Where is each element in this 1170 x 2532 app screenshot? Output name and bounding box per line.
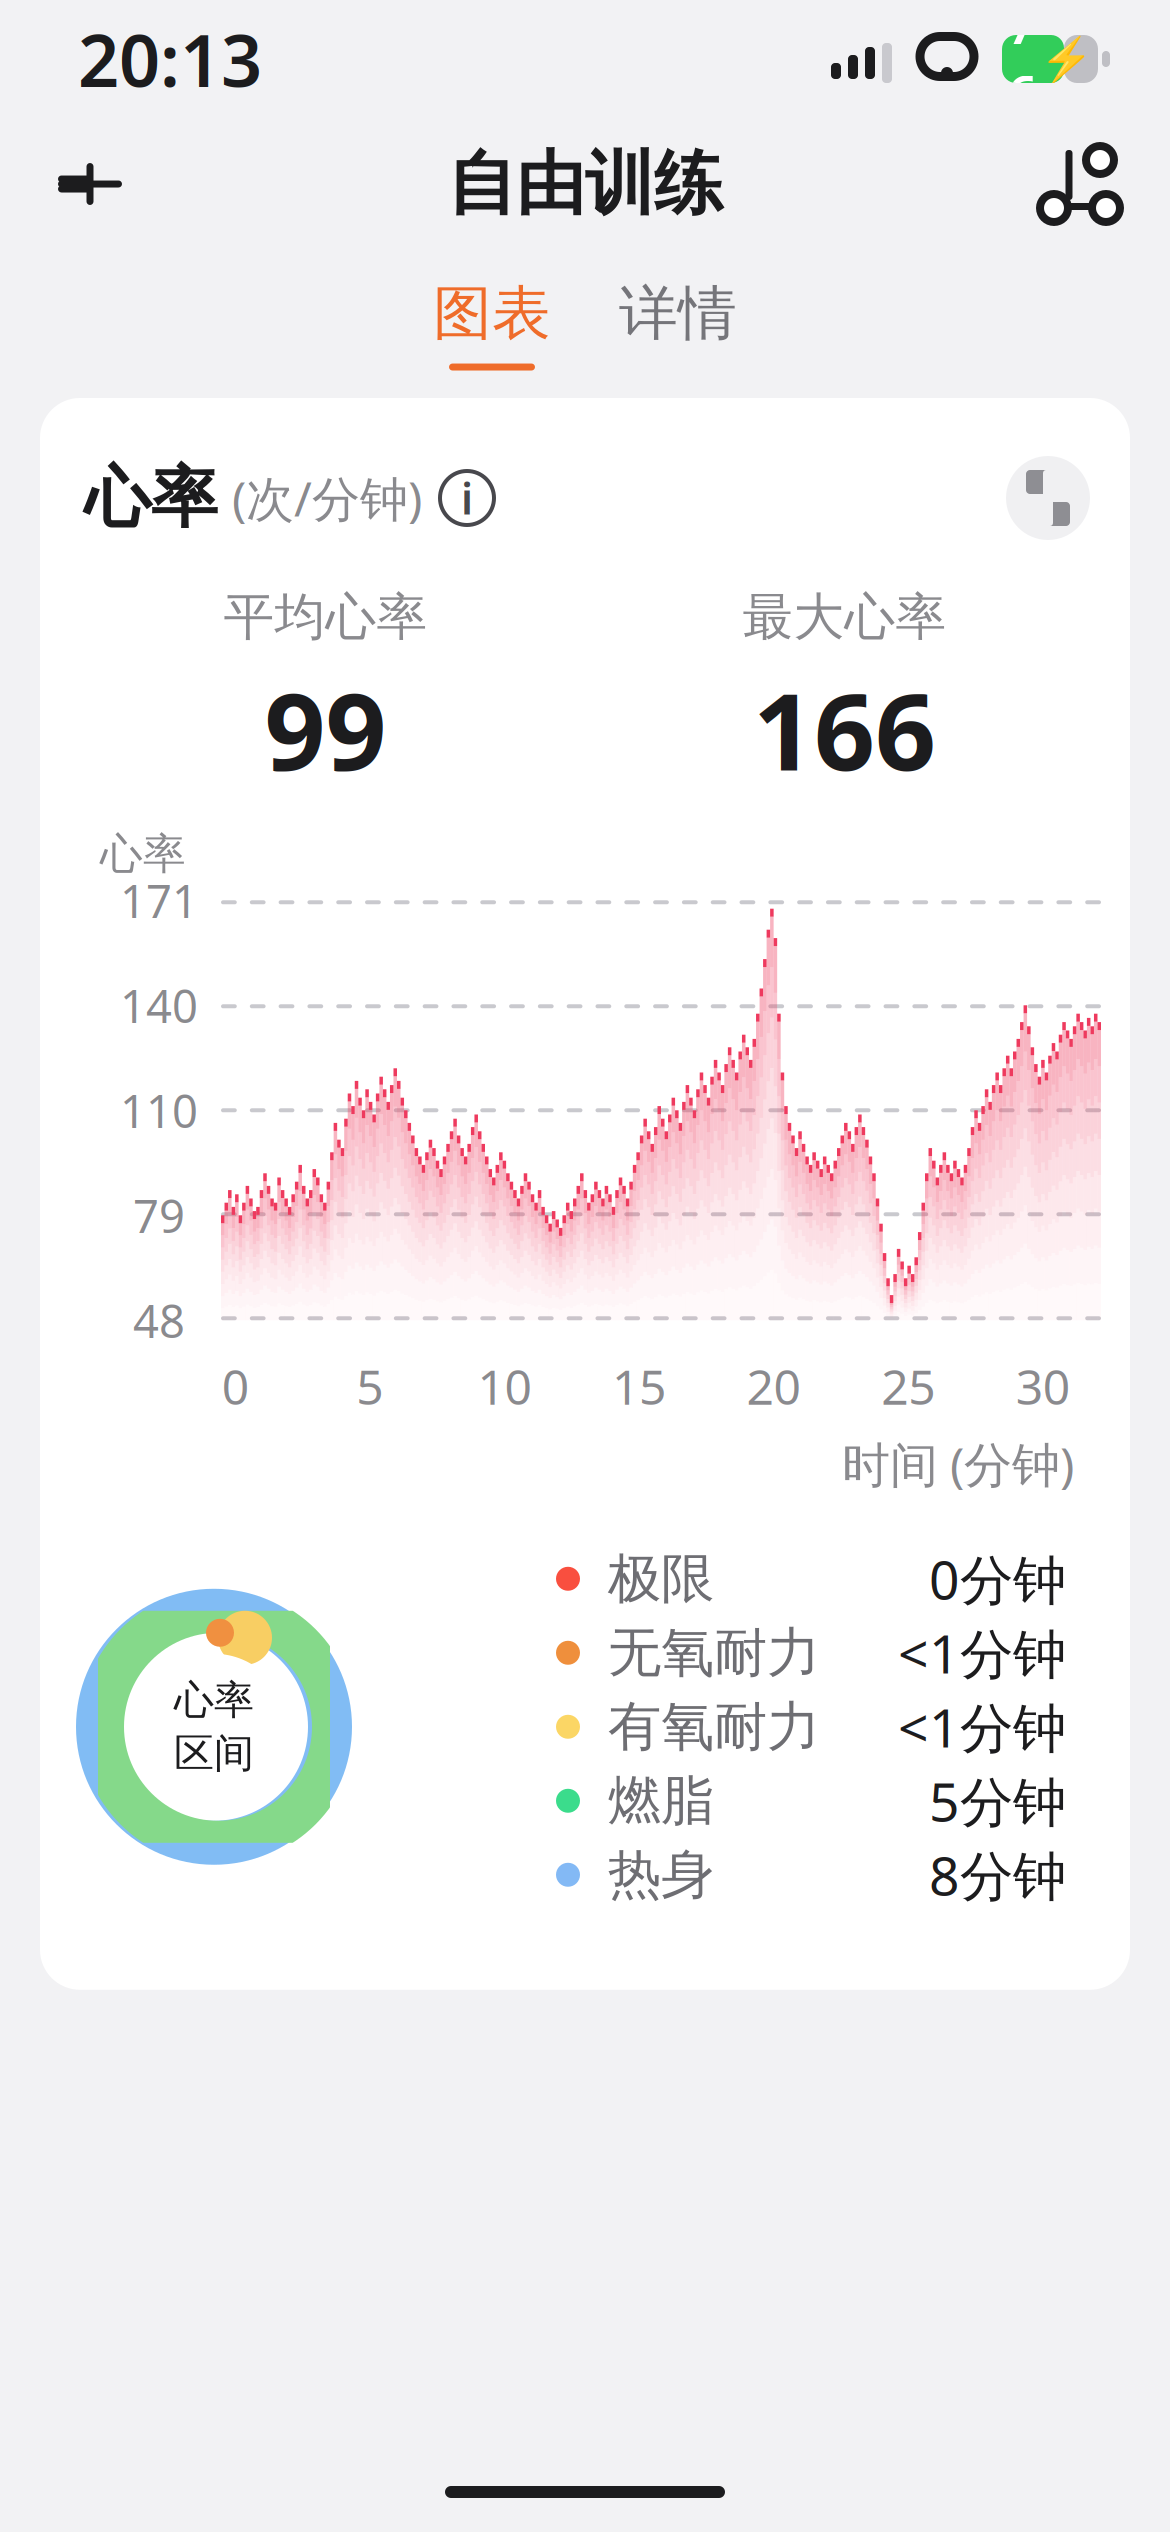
staticText: 99 bbox=[264, 658, 386, 800]
staticText: 有氧耐力 bbox=[608, 1694, 820, 1759]
staticText: 171 bbox=[120, 870, 198, 930]
staticText: 5分钟 bbox=[929, 1765, 1066, 1836]
staticText: 140 bbox=[120, 975, 198, 1035]
button[interactable]: 图表 bbox=[421, 277, 563, 371]
staticText: 76 bbox=[1007, 0, 1038, 130]
staticText: 0 bbox=[222, 1354, 249, 1418]
staticText: <1分钟 bbox=[898, 1617, 1066, 1688]
staticText: 25 bbox=[881, 1354, 935, 1418]
button[interactable]: 心率说明 bbox=[440, 471, 494, 525]
staticText: 0分钟 bbox=[929, 1543, 1066, 1614]
staticText: 110 bbox=[120, 1080, 198, 1140]
button[interactable]: 返回 bbox=[30, 124, 150, 244]
staticText: i bbox=[461, 470, 473, 526]
staticText: 20:13 bbox=[78, 11, 262, 107]
staticText: 心率 bbox=[100, 828, 186, 880]
staticText: 图表 bbox=[433, 277, 551, 350]
staticText: 48 bbox=[133, 1290, 185, 1350]
staticText: 10 bbox=[477, 1354, 531, 1418]
staticText: 区间 bbox=[174, 1729, 254, 1778]
staticText: 20 bbox=[747, 1354, 801, 1418]
staticText: 详情 bbox=[619, 277, 737, 350]
staticText: 5 bbox=[356, 1354, 383, 1418]
button[interactable]: 详情 bbox=[607, 277, 749, 371]
staticText: 30 bbox=[1016, 1354, 1070, 1418]
staticText: 15 bbox=[612, 1354, 666, 1418]
staticText: 无氧耐力 bbox=[608, 1620, 820, 1685]
staticText: 8分钟 bbox=[929, 1839, 1066, 1910]
staticText: <1分钟 bbox=[898, 1691, 1066, 1762]
staticText: 166 bbox=[753, 658, 936, 800]
staticText: 热身 bbox=[608, 1842, 714, 1907]
staticText: 极限 bbox=[608, 1546, 714, 1611]
staticText: 时间 (分钟) bbox=[842, 1432, 1074, 1496]
staticText: 心率 bbox=[174, 1676, 254, 1725]
button[interactable]: 分享 bbox=[1020, 124, 1140, 244]
staticText: ⚡ bbox=[1040, 35, 1093, 83]
staticText: 79 bbox=[133, 1185, 185, 1245]
staticText: 燃脂 bbox=[608, 1768, 714, 1833]
staticText: 最大心率 bbox=[742, 586, 946, 648]
staticText: 平均心率 bbox=[223, 586, 427, 648]
button[interactable]: 全屏显示 bbox=[1006, 456, 1090, 540]
staticText: (次/分钟) bbox=[232, 466, 422, 530]
staticText: 心率 bbox=[84, 457, 218, 539]
staticText: 自由训练 bbox=[447, 141, 723, 227]
